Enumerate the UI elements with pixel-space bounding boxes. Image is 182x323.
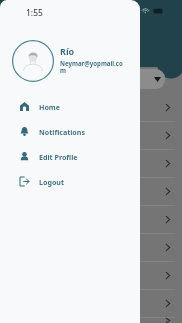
button[interactable]: Logout: [20, 169, 140, 194]
button[interactable]: [0, 262, 182, 289]
button[interactable]: [0, 234, 182, 261]
button[interactable]: [0, 178, 182, 205]
staticText: Neymar@yopmail.com: [60, 59, 128, 75]
button[interactable]: Notifications: [20, 119, 140, 144]
staticText: Edit Profile: [39, 152, 78, 162]
button[interactable]: [0, 150, 182, 177]
button[interactable]: Home: [20, 94, 140, 119]
button[interactable]: Select: [119, 69, 165, 89]
staticText: 1:55: [26, 7, 43, 19]
button[interactable]: [0, 94, 182, 121]
button[interactable]: Edit Profile: [20, 144, 140, 169]
button[interactable]: [0, 122, 182, 149]
button[interactable]: [0, 290, 182, 317]
staticText: Notifications: [39, 127, 85, 137]
button[interactable]: [0, 206, 182, 233]
staticText: Río: [60, 45, 75, 57]
staticText: Logout: [39, 177, 65, 187]
button[interactable]: [0, 318, 182, 323]
staticText: Home: [39, 102, 61, 112]
